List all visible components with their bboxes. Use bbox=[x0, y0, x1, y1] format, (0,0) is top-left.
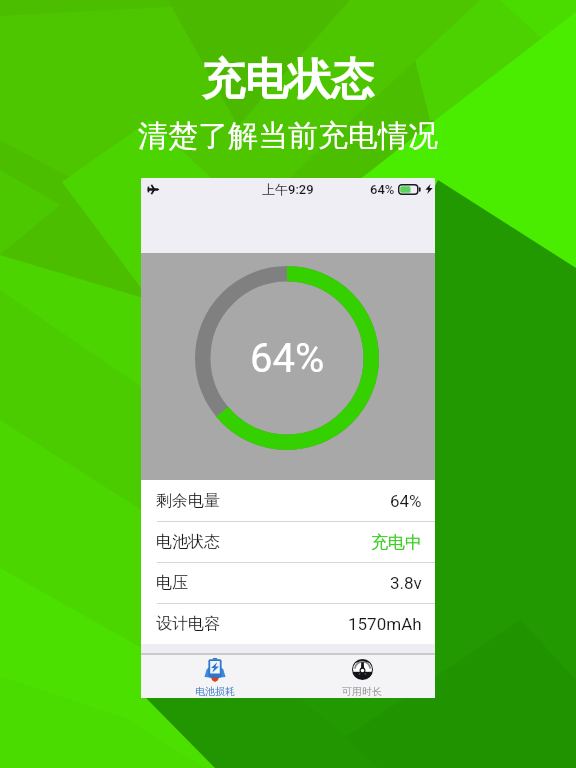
staticText: 可用时长 bbox=[342, 685, 382, 698]
staticText: 64% bbox=[390, 491, 422, 511]
staticText: 清楚了解当前充电情况 bbox=[138, 117, 438, 155]
button[interactable]: 可用时长 bbox=[288, 655, 435, 698]
staticText: 电池状态 bbox=[156, 532, 220, 552]
staticText: 设计电容 bbox=[156, 614, 220, 634]
other: 可用时长 bbox=[352, 659, 373, 680]
staticText: 充电中 bbox=[371, 532, 422, 553]
staticText: 剩余电量 bbox=[156, 491, 220, 511]
staticText: 64% bbox=[370, 182, 395, 197]
staticText: 充电状态 bbox=[202, 53, 374, 107]
button[interactable]: 电池损耗 bbox=[141, 655, 288, 698]
staticText: 电池损耗 bbox=[195, 685, 235, 698]
other: 电池损耗 bbox=[204, 657, 226, 682]
staticText: 1570mAh bbox=[348, 614, 422, 634]
staticText: 上午9:29 bbox=[262, 181, 314, 197]
button[interactable]: 电池状态 bbox=[141, 521, 435, 562]
staticText: 电压 bbox=[156, 573, 188, 593]
staticText: 64% bbox=[250, 335, 325, 382]
button[interactable]: 剩余电量 bbox=[141, 480, 435, 521]
button[interactable]: 设计电容 bbox=[141, 603, 435, 644]
staticText: 3.8v bbox=[390, 573, 422, 593]
button[interactable]: 电压 bbox=[141, 562, 435, 603]
